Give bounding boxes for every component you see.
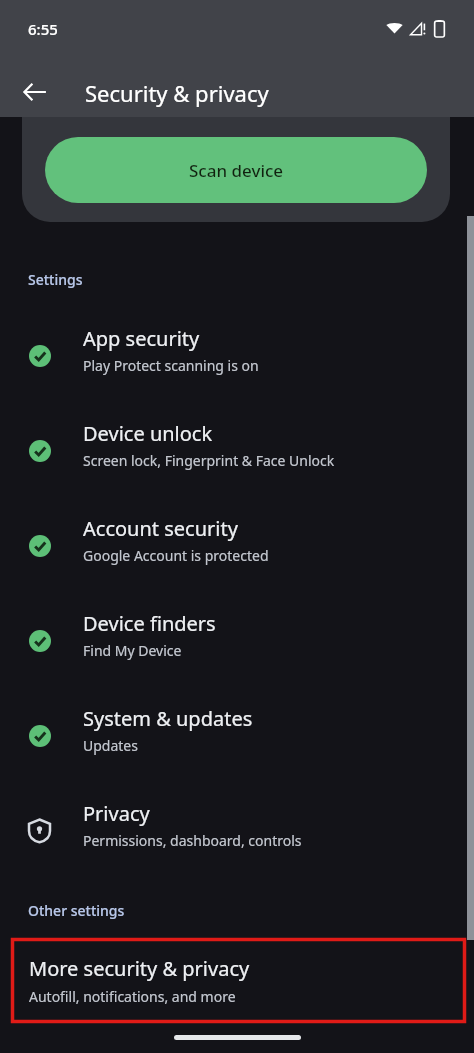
staticText: Permissions, dashboard, controls xyxy=(83,831,302,850)
staticText: Settings xyxy=(28,270,83,289)
staticText: System & updates xyxy=(83,705,253,732)
staticText: App security xyxy=(83,325,200,352)
staticText: Play Protect scanning is on xyxy=(83,356,259,375)
staticText: Device unlock xyxy=(83,420,213,447)
staticText: Privacy xyxy=(83,800,150,827)
staticText: Device finders xyxy=(83,610,216,637)
button[interactable]: Device unlock xyxy=(0,408,474,496)
button[interactable]: More security & privacy xyxy=(0,938,474,1023)
button[interactable]: App security xyxy=(0,313,474,401)
staticText: Screen lock, Fingerprint & Face Unlock xyxy=(83,451,335,470)
staticText: Autofill, notifications, and more xyxy=(29,987,236,1006)
staticText: Security & privacy xyxy=(85,78,269,108)
staticText: Other settings xyxy=(28,901,125,920)
staticText: Updates xyxy=(83,736,138,755)
button[interactable]: Privacy xyxy=(0,788,474,876)
button[interactable]: Back xyxy=(11,68,59,116)
staticText: Account security xyxy=(83,515,238,542)
staticText: 6:55 xyxy=(28,19,58,39)
button[interactable]: Device finders xyxy=(0,598,474,686)
staticText: Scan device xyxy=(189,159,284,182)
button[interactable]: Scan device xyxy=(45,137,427,203)
button[interactable]: Account security xyxy=(0,503,474,591)
staticText: Find My Device xyxy=(83,641,182,660)
staticText: More security & privacy xyxy=(29,955,250,982)
staticText: Google Account is protected xyxy=(83,546,269,565)
button[interactable]: System & updates xyxy=(0,693,474,781)
